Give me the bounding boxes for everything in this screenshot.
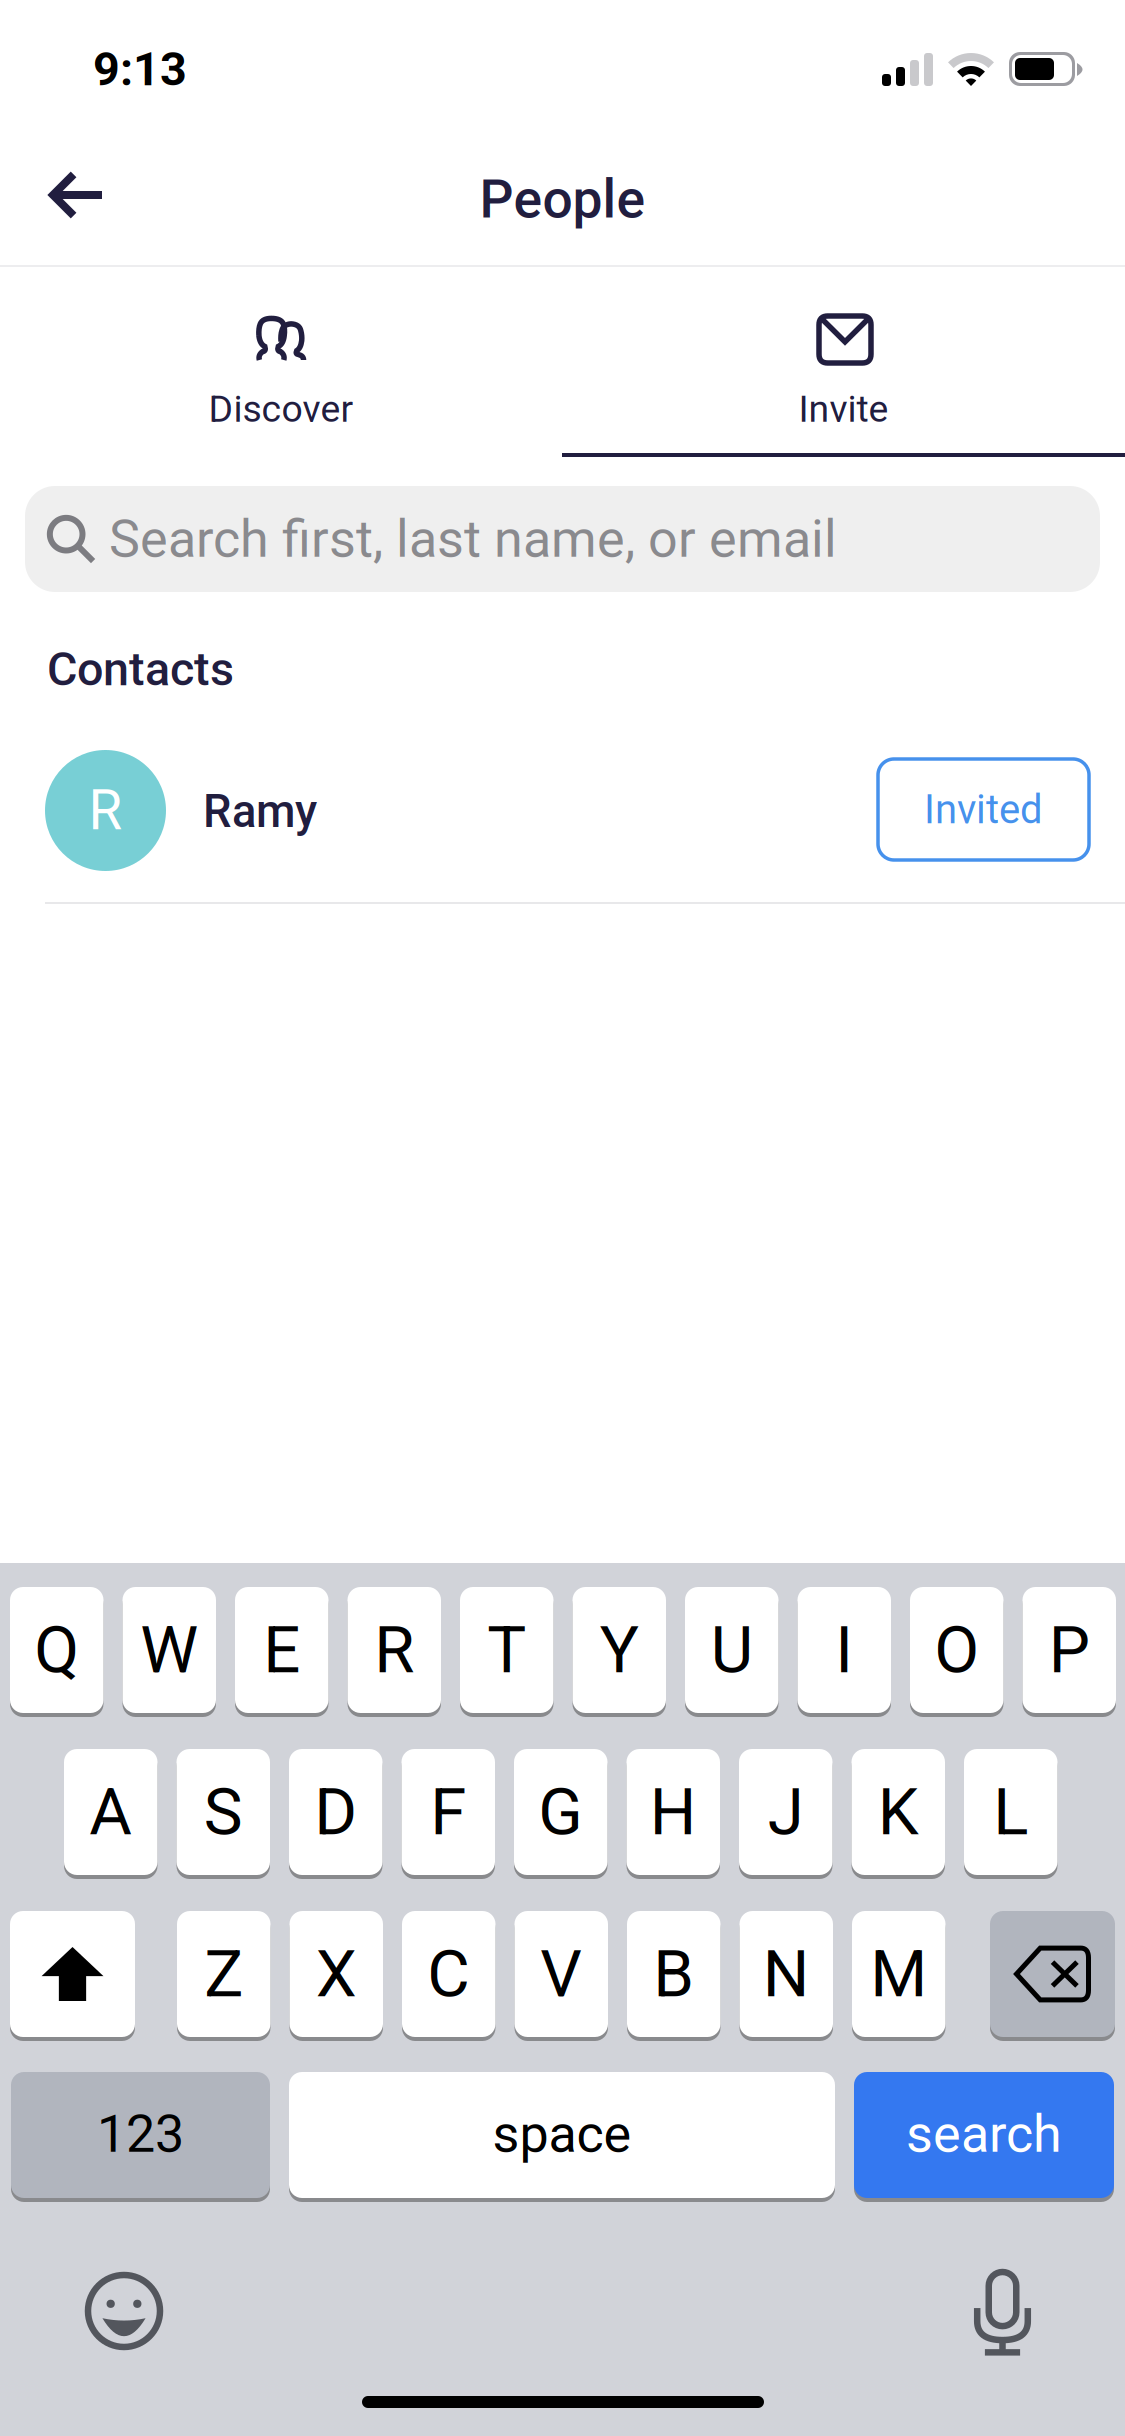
button[interactable]: D <box>289 1747 382 1877</box>
button[interactable]: Shift <box>10 1909 135 2039</box>
staticText: People <box>479 168 645 230</box>
button[interactable]: L <box>964 1747 1057 1877</box>
button[interactable]: Y <box>572 1585 666 1715</box>
button[interactable]: Search first, last name, or email <box>25 486 1100 592</box>
button[interactable]: Emoji <box>62 2249 186 2373</box>
button[interactable]: H <box>626 1747 720 1877</box>
button[interactable]: Invite <box>562 267 1125 457</box>
staticText: X <box>316 1936 357 2012</box>
staticText: D <box>314 1774 357 1850</box>
staticText: E <box>263 1612 300 1688</box>
staticText: A <box>89 1774 132 1850</box>
staticText: Search first, last name, or email <box>109 508 837 569</box>
staticText: P <box>1049 1612 1090 1688</box>
staticText: 123 <box>97 2103 184 2164</box>
staticText: H <box>650 1774 697 1850</box>
button[interactable]: J <box>739 1747 832 1877</box>
staticText: N <box>763 1936 810 2012</box>
button[interactable]: S <box>176 1747 270 1877</box>
button[interactable]: V <box>514 1909 608 2039</box>
staticText: W <box>140 1612 198 1688</box>
button[interactable]: Q <box>10 1585 103 1715</box>
button[interactable]: O <box>910 1585 1003 1715</box>
button[interactable]: Discover <box>0 267 562 457</box>
button[interactable]: E <box>235 1585 328 1715</box>
staticText: Invited <box>924 786 1043 833</box>
staticText: Discover <box>208 387 353 431</box>
button[interactable]: X <box>289 1909 383 2039</box>
staticText: S <box>204 1774 243 1850</box>
button[interactable]: F <box>401 1747 495 1877</box>
staticText: L <box>993 1774 1028 1850</box>
button[interactable]: G <box>514 1747 607 1877</box>
button[interactable]: Delete <box>990 1909 1115 2039</box>
staticText: C <box>427 1936 470 2012</box>
button[interactable]: T <box>460 1585 553 1715</box>
staticText: V <box>540 1936 582 2012</box>
staticText: U <box>711 1612 753 1688</box>
button[interactable]: Z <box>177 1909 270 2039</box>
staticText: Z <box>204 1936 243 2012</box>
button[interactable]: A <box>64 1747 157 1877</box>
staticText: 9:13 <box>93 42 187 97</box>
button[interactable]: search <box>854 2070 1114 2200</box>
staticText: R <box>374 1612 414 1688</box>
button[interactable]: W <box>122 1585 216 1715</box>
staticText: Ramy <box>203 785 317 838</box>
staticText: K <box>878 1774 919 1850</box>
staticText: I <box>835 1612 853 1688</box>
staticText: F <box>430 1774 466 1850</box>
button[interactable]: space <box>289 2070 835 2200</box>
staticText: J <box>768 1774 804 1850</box>
staticText: search <box>906 2103 1062 2164</box>
staticText: Q <box>34 1612 79 1688</box>
staticText: R <box>88 778 122 843</box>
staticText: Contacts <box>47 642 234 697</box>
button[interactable]: B <box>627 1909 720 2039</box>
staticText: B <box>653 1936 694 2012</box>
button[interactable]: Numbers <box>11 2070 270 2200</box>
button[interactable]: I <box>797 1585 891 1715</box>
staticText: T <box>487 1612 526 1688</box>
button[interactable]: R <box>347 1585 441 1715</box>
button[interactable]: N <box>739 1909 833 2039</box>
staticText: space <box>492 2103 631 2164</box>
button[interactable]: C <box>402 1909 495 2039</box>
button[interactable]: R <box>0 730 1125 890</box>
button[interactable]: M <box>852 1909 945 2039</box>
staticText: O <box>934 1612 979 1688</box>
staticText: Invite <box>798 387 888 431</box>
button[interactable]: Dictation <box>953 2250 1052 2376</box>
staticText: G <box>538 1774 583 1850</box>
button[interactable]: Back <box>19 134 136 256</box>
staticText: Y <box>600 1612 639 1688</box>
button[interactable]: K <box>851 1747 945 1877</box>
button[interactable]: P <box>1022 1585 1116 1715</box>
staticText: M <box>870 1936 927 2012</box>
button[interactable]: U <box>685 1585 778 1715</box>
